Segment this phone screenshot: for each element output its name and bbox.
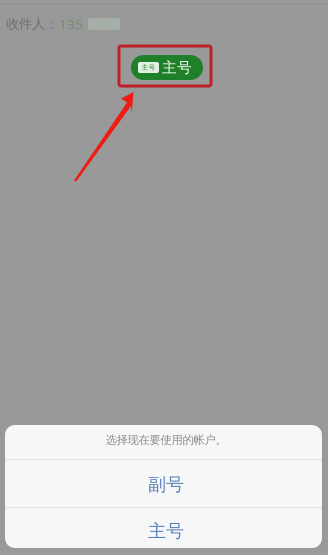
button[interactable]: 主号: [5, 508, 322, 548]
button[interactable]: 主号: [131, 55, 203, 80]
staticText: 主号: [148, 520, 184, 542]
staticText: 主号: [141, 63, 155, 72]
staticText: 选择现在要使用的帐户。: [105, 433, 226, 447]
button[interactable]: 副号: [5, 460, 322, 507]
staticText: 135: [59, 15, 83, 33]
staticText: 收件人：: [6, 16, 58, 32]
staticText: 副号: [148, 473, 184, 496]
staticText: 主号: [162, 58, 192, 77]
